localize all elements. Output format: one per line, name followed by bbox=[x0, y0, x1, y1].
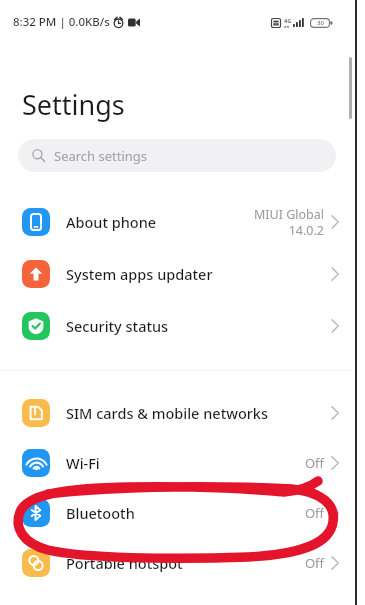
staticText: MIUI Global 14.0.2 bbox=[253, 206, 324, 238]
staticText: Off bbox=[304, 504, 324, 522]
staticText: Wi-Fi bbox=[66, 453, 100, 473]
button[interactable]: Bluetooth bbox=[0, 488, 354, 538]
button[interactable]: About phone bbox=[0, 196, 354, 248]
staticText: 30 bbox=[317, 19, 324, 27]
staticText: Settings bbox=[22, 86, 125, 123]
button[interactable]: Security status bbox=[0, 300, 354, 352]
button[interactable]: Search settings bbox=[18, 139, 336, 172]
button[interactable]: Wi-Fi bbox=[0, 438, 354, 488]
button[interactable]: SIM cards & mobile networks bbox=[0, 388, 354, 438]
staticText: 4G bbox=[284, 17, 292, 24]
staticText: Bluetooth bbox=[66, 503, 135, 523]
staticText: System apps updater bbox=[66, 264, 213, 284]
staticText: Off bbox=[304, 454, 324, 472]
staticText: Portable hotspot bbox=[66, 553, 183, 573]
staticText: 8:32 PM | 0.0KB/s bbox=[13, 14, 110, 30]
staticText: About phone bbox=[66, 212, 157, 232]
staticText: Off bbox=[304, 554, 324, 572]
button[interactable]: Portable hotspot bbox=[0, 538, 354, 588]
button[interactable]: System apps updater bbox=[0, 248, 354, 300]
staticText: Search settings bbox=[54, 147, 148, 165]
staticText: SIM cards & mobile networks bbox=[66, 403, 269, 423]
staticText: Security status bbox=[66, 316, 169, 336]
